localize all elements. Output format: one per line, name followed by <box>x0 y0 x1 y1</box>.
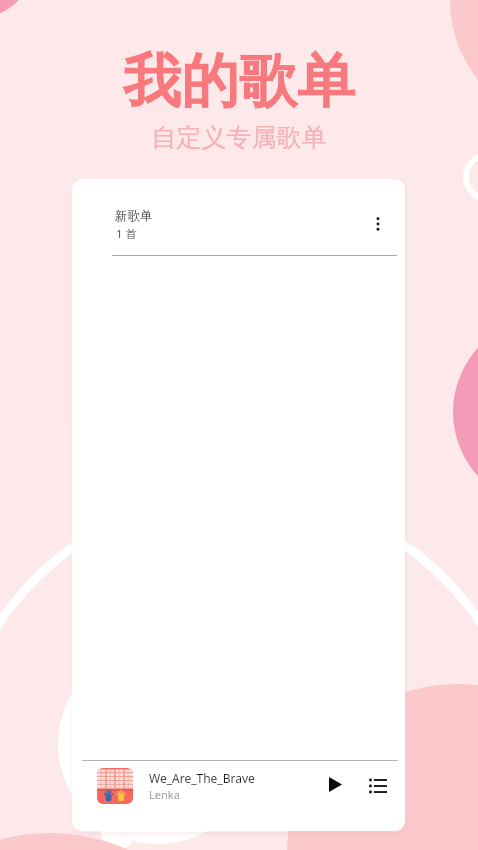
button[interactable]: Playlist <box>360 768 396 804</box>
staticText: 新歌单 <box>115 208 153 224</box>
button[interactable]: Play <box>317 766 353 802</box>
staticText: 自定义专属歌单 <box>0 122 478 153</box>
staticText: Lenka <box>149 787 180 802</box>
staticText: We_Are_The_Brave <box>149 770 255 786</box>
button[interactable]: We_Are_The_Brave <box>72 761 405 811</box>
staticText: 我的歌单 <box>0 45 478 118</box>
staticText: 1 首 <box>116 226 138 242</box>
button[interactable]: More options <box>362 207 393 241</box>
button[interactable]: 新歌单 <box>72 179 405 256</box>
